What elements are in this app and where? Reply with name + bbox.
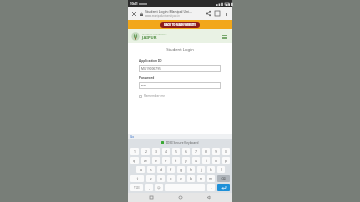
staticText: 7 [195, 149, 197, 154]
button[interactable]: Recents [147, 193, 156, 202]
staticText: k [210, 167, 212, 172]
button[interactable]: Home [176, 193, 185, 202]
button[interactable]: , [145, 184, 153, 191]
staticText: p [225, 158, 228, 163]
staticText: a [140, 167, 142, 172]
staticText: Password [139, 76, 155, 80]
button[interactable]: o [212, 157, 220, 164]
staticText: JAIPUR [142, 35, 157, 41]
button[interactable]: Back [204, 193, 213, 202]
button[interactable]: y [182, 157, 190, 164]
button[interactable]: v [177, 175, 185, 182]
button[interactable]: Share [204, 9, 213, 18]
staticText: v [180, 176, 182, 181]
button[interactable]: t [172, 157, 180, 164]
staticText: q [133, 158, 136, 163]
staticText: 4 [165, 149, 167, 154]
button[interactable]: x [157, 175, 165, 182]
button[interactable]: 9 [212, 148, 220, 155]
button[interactable]: s [147, 166, 155, 173]
staticText: f [170, 167, 172, 172]
staticText: Student Login: Manipal Uni... [145, 9, 192, 14]
staticText: c [170, 176, 172, 181]
staticText: ⌫ [221, 177, 226, 181]
button[interactable]: Open in browser [213, 9, 222, 18]
staticText: m [209, 176, 213, 181]
button[interactable]: c [167, 175, 175, 182]
staticText: 10:41 [130, 2, 138, 6]
button[interactable]: e [152, 157, 160, 164]
button[interactable]: 8 [202, 148, 210, 155]
button[interactable]: Enter [217, 184, 230, 191]
button[interactable]: w [141, 157, 150, 164]
button[interactable]: z [146, 175, 155, 182]
staticText: t [175, 158, 177, 163]
button[interactable]: . [207, 184, 215, 191]
button[interactable]: 4 [162, 148, 170, 155]
button[interactable]: h [187, 166, 195, 173]
button[interactable]: MU19006795 [139, 65, 221, 72]
button[interactable]: n [197, 175, 205, 182]
button[interactable]: q [130, 157, 139, 164]
button[interactable]: d [157, 166, 165, 173]
staticText: •••• [141, 84, 146, 88]
button[interactable]: Remember me [139, 94, 221, 98]
staticText: r [165, 158, 167, 163]
staticText: ?123 [134, 186, 140, 190]
staticText: 9 [215, 149, 217, 154]
button[interactable]: 5 [172, 148, 180, 155]
button[interactable]: Symbols [130, 184, 143, 191]
staticText: e [155, 158, 157, 163]
button[interactable]: p [222, 157, 230, 164]
button[interactable]: 2 [141, 148, 150, 155]
staticText: 0 [225, 149, 227, 154]
staticText: 6 [185, 149, 187, 154]
button[interactable]: g [177, 166, 185, 173]
staticText: ⇧ [136, 177, 139, 181]
staticText: y [185, 158, 187, 163]
button[interactable]: 3 [152, 148, 160, 155]
staticText: w [144, 158, 147, 163]
button[interactable]: a [136, 166, 145, 173]
button[interactable]: BACK TO MAIN WEBSITE [160, 22, 200, 28]
button[interactable]: i [202, 157, 210, 164]
button[interactable]: Shift [130, 175, 144, 182]
button[interactable]: •••• [139, 82, 221, 89]
button[interactable]: f [167, 166, 175, 173]
staticText: www.manipaluniversity.ac.in [145, 14, 180, 18]
button[interactable]: 0 [222, 148, 230, 155]
button[interactable]: Menu [220, 32, 229, 41]
button[interactable]: Go [130, 135, 135, 139]
staticText: h [190, 167, 193, 172]
staticText: IDBI Secure Keyboard [166, 141, 199, 145]
button[interactable]: l [217, 166, 225, 173]
button[interactable]: 1 [130, 148, 139, 155]
button[interactable]: Backspace [217, 175, 230, 182]
button[interactable]: 7 [192, 148, 200, 155]
staticText: i [206, 158, 207, 163]
other: Secure [138, 11, 144, 17]
staticText: 3 [155, 149, 157, 154]
staticText: l [221, 167, 222, 172]
button[interactable]: Close [130, 10, 138, 18]
button[interactable]: Emoji [155, 184, 163, 191]
staticText: o [215, 158, 218, 163]
staticText: . [211, 185, 212, 190]
staticText: z [150, 176, 152, 181]
button[interactable]: u [192, 157, 200, 164]
staticText: g [180, 167, 183, 172]
button[interactable]: m [207, 175, 215, 182]
staticText: Remember me [144, 94, 165, 98]
button[interactable]: More options [222, 10, 230, 18]
button[interactable]: r [162, 157, 170, 164]
button[interactable]: b [187, 175, 195, 182]
staticText: s [150, 167, 152, 172]
button[interactable]: 6 [182, 148, 190, 155]
button[interactable]: k [207, 166, 215, 173]
staticText: Student Login [166, 47, 194, 53]
staticText: 2 [145, 149, 147, 154]
button[interactable]: j [197, 166, 205, 173]
staticText: x [160, 176, 162, 181]
staticText: n [200, 176, 203, 181]
